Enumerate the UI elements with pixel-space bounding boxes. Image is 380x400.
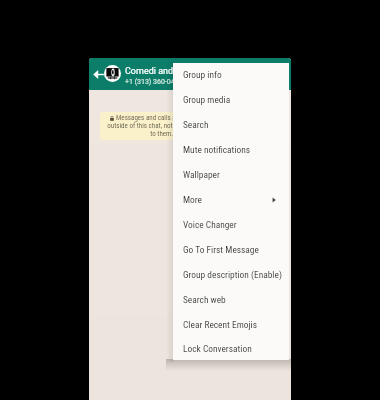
button[interactable]: Back <box>89 65 107 83</box>
staticText: Voice Changer <box>183 219 237 230</box>
button[interactable]: Mute notifications <box>173 137 289 162</box>
staticText: Group media <box>183 94 231 105</box>
staticText: outside of this chat, not even WhatsApp,… <box>107 122 268 130</box>
staticText: Wallpaper <box>183 169 220 180</box>
staticText: Clear Recent Emojis <box>183 319 257 330</box>
staticText: Mute notifications <box>183 144 251 155</box>
button[interactable]: Group media <box>173 87 289 112</box>
button[interactable]: More <box>173 187 289 212</box>
button[interactable]: Group info <box>173 62 289 87</box>
button[interactable]: Messages and calls are end-to-end encryp… <box>100 112 273 140</box>
staticText: Search web <box>183 294 226 305</box>
button[interactable]: Search <box>173 112 289 137</box>
staticText: Group info <box>183 69 222 80</box>
staticText: Messages and calls are end-to-end encryp… <box>116 114 264 122</box>
button[interactable]: Go To First Message <box>173 237 289 262</box>
staticText: Lock Conversation <box>183 343 252 354</box>
button[interactable]: Voice Changer <box>173 212 289 237</box>
button[interactable]: Search web <box>173 287 289 312</box>
staticText: Group description (Enable) <box>183 269 282 280</box>
button[interactable]: Group description (Enable) <box>173 262 289 287</box>
staticText: Search <box>183 119 209 130</box>
button[interactable]: Wallpaper <box>173 162 289 187</box>
button[interactable]: Lock Conversation <box>173 337 289 359</box>
staticText: Comedi and <box>125 66 174 77</box>
staticText: Go To First Message <box>183 244 259 255</box>
button[interactable]: Clear Recent Emojis <box>173 312 289 337</box>
staticText: +1 (313) 360-0481 <box>125 78 183 86</box>
staticText: More <box>183 194 202 205</box>
staticText: to them. Tap to learn more. <box>150 130 225 138</box>
button[interactable]: Group photo <box>104 65 121 82</box>
